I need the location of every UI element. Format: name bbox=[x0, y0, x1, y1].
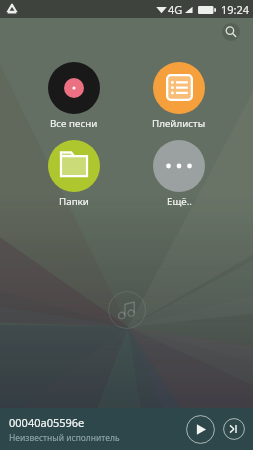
staticText: Папки bbox=[59, 195, 89, 208]
button[interactable]: Плейлисты bbox=[129, 62, 229, 134]
staticText: 4G bbox=[168, 2, 183, 17]
staticText: Все песни bbox=[50, 117, 98, 130]
button[interactable]: Play bbox=[185, 414, 216, 445]
staticText: 00040a05596e bbox=[9, 415, 85, 430]
button[interactable]: Ещё.. bbox=[129, 140, 229, 212]
staticText: Плейлисты bbox=[152, 117, 206, 130]
staticText: Неизвестный исполнитель bbox=[9, 432, 120, 444]
button[interactable]: Все песни bbox=[24, 62, 124, 134]
button[interactable]: Search bbox=[222, 23, 240, 41]
button[interactable]: Next track bbox=[220, 415, 248, 443]
staticText: Ещё.. bbox=[167, 195, 192, 208]
staticText: 19:24 bbox=[221, 2, 250, 17]
button[interactable]: Папки bbox=[24, 140, 124, 212]
